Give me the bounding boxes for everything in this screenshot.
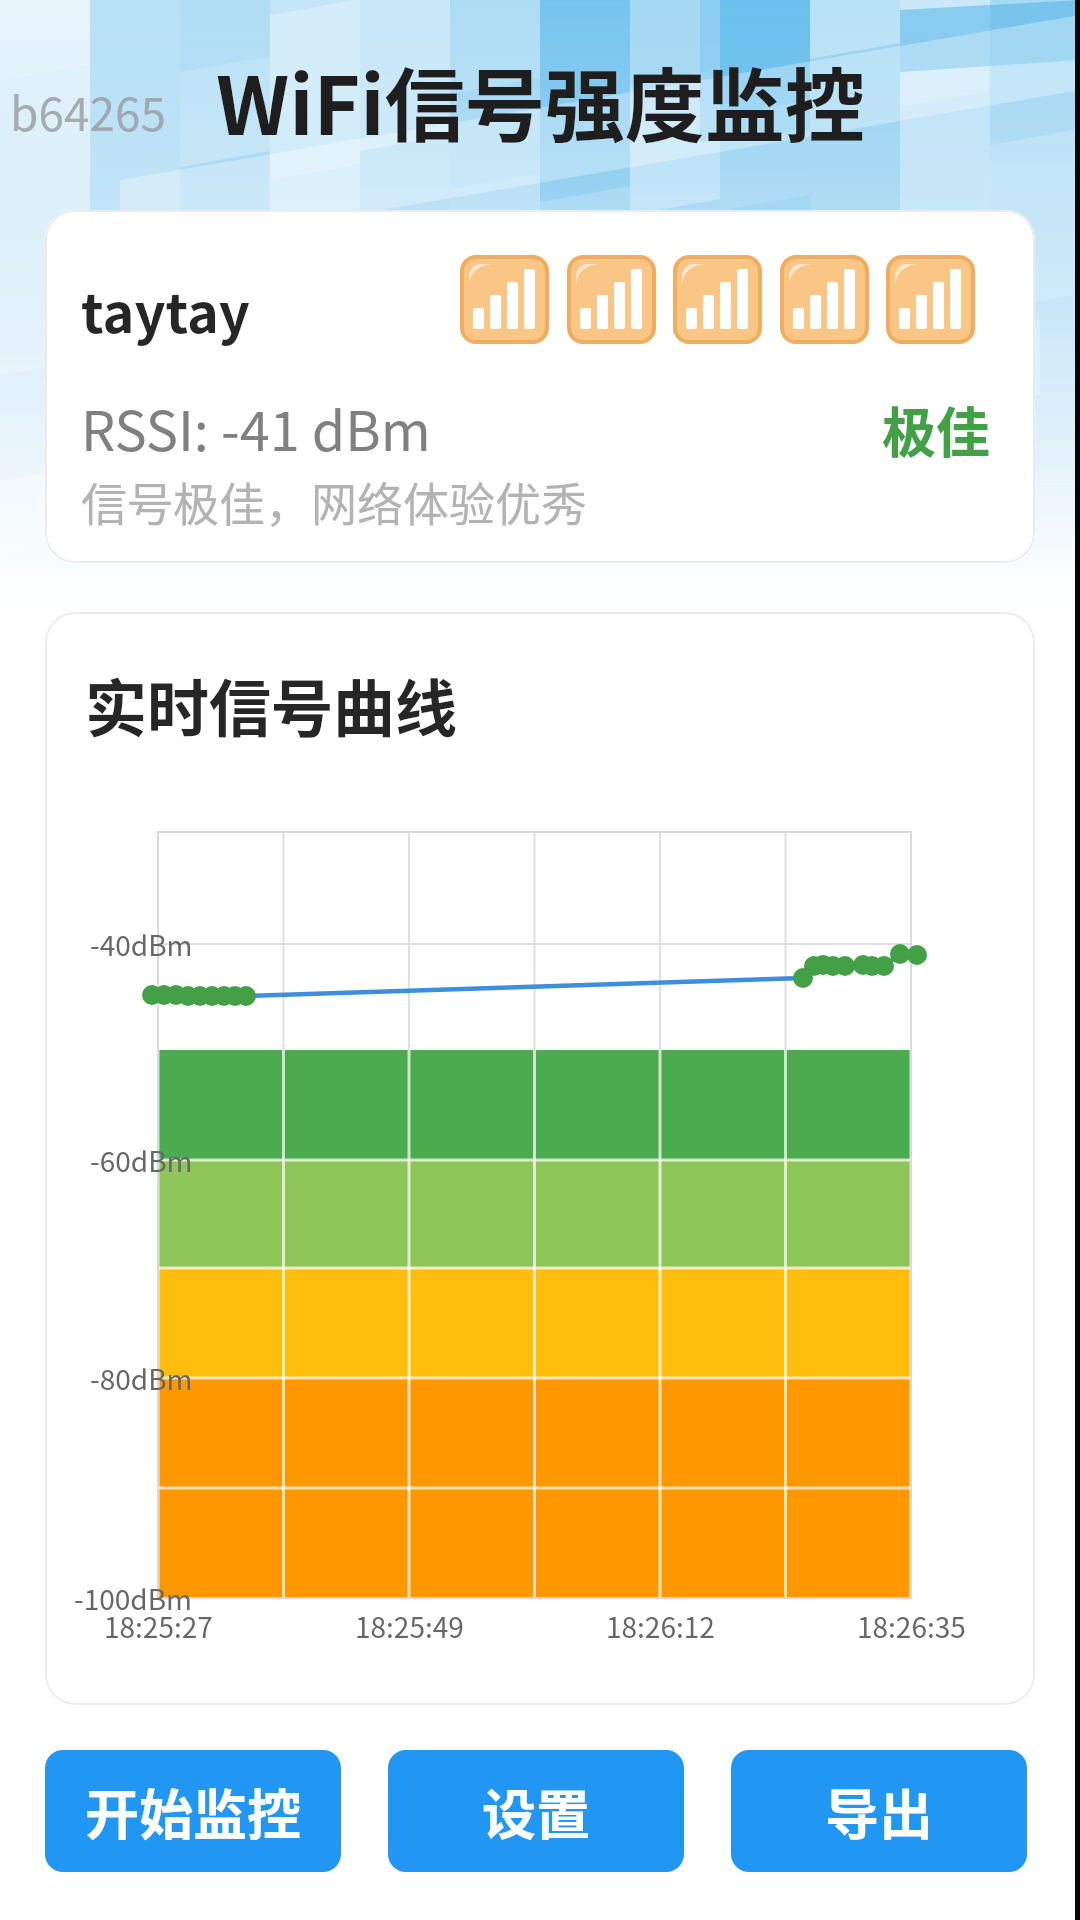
button[interactable]: 设置: [388, 1750, 684, 1872]
button[interactable]: 开始监控: [45, 1750, 341, 1872]
staticText: 实时信号曲线: [85, 660, 458, 750]
staticText: -100dBm: [74, 1578, 193, 1618]
staticText: 信号极佳，网络体验优秀: [81, 468, 587, 535]
staticText: WiFi信号强度监控: [216, 42, 865, 158]
staticText: -80dBm: [90, 1358, 193, 1398]
staticText: 18:25:49: [355, 1606, 464, 1647]
staticText: 18:25:27: [104, 1606, 213, 1647]
staticText: 18:26:12: [606, 1606, 715, 1647]
staticText: -40dBm: [90, 924, 193, 964]
staticText: 设置: [482, 1772, 590, 1850]
button[interactable]: 导出: [731, 1750, 1027, 1872]
staticText: 极佳: [882, 390, 990, 468]
staticText: 导出: [825, 1772, 933, 1850]
staticText: RSSI: -41 dBm: [81, 388, 431, 466]
staticText: b64265: [10, 78, 167, 145]
staticText: 18:26:35: [857, 1606, 966, 1647]
staticText: 开始监控: [85, 1772, 301, 1850]
staticText: taytay: [81, 270, 250, 348]
staticText: -60dBm: [90, 1140, 193, 1180]
